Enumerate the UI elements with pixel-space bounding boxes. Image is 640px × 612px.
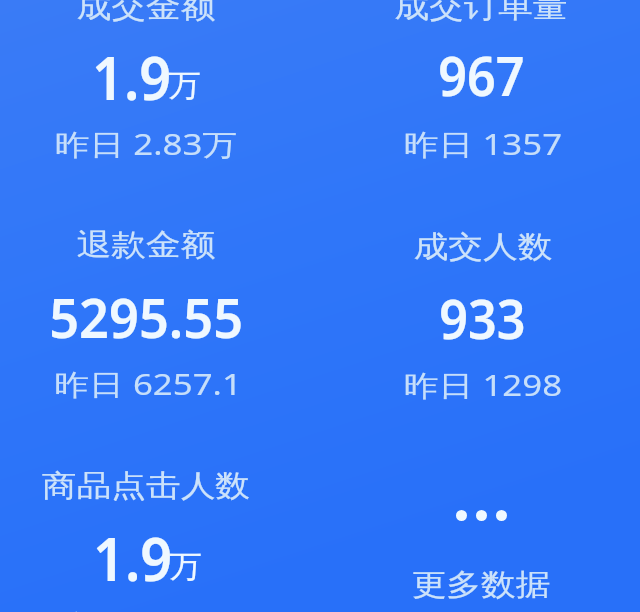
button[interactable]: 成交订单量 967 <box>330 0 630 190</box>
staticText: 昨日 1298 <box>404 365 562 405</box>
staticText: 成交人数 <box>414 228 552 266</box>
staticText: 商品点击人数 <box>42 467 250 505</box>
button[interactable]: 更多数据 <box>330 440 630 612</box>
staticText: 成交金额 <box>77 0 215 26</box>
other: 更多数据 <box>456 510 507 521</box>
staticText: 933 <box>439 281 526 355</box>
staticText: 更多数据 <box>412 566 550 604</box>
staticText: 1.9 <box>93 517 173 599</box>
staticText: 昨日 6257.1 <box>54 364 243 404</box>
staticText: 5295.55 <box>49 280 244 354</box>
staticText: 万 <box>169 547 202 586</box>
button[interactable]: 商品点击人数 1.9万 <box>10 440 310 612</box>
button[interactable]: 退款金额 5295.55 <box>10 200 310 420</box>
staticText: 退款金额 <box>77 226 215 264</box>
staticText: 967 <box>438 38 525 112</box>
staticText: 万 <box>168 66 201 105</box>
staticText: 昨日 2.83万 <box>55 124 238 164</box>
staticText: 1.9 <box>92 36 172 118</box>
staticText: 成交订单量 <box>394 0 568 26</box>
staticText: 昨日 1357 <box>404 124 562 164</box>
button[interactable]: 成交金额 1.9万 <box>10 0 310 190</box>
button[interactable]: 成交人数 933 <box>330 200 630 420</box>
